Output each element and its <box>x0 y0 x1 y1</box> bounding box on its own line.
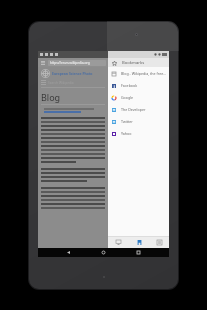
button[interactable]: History <box>149 237 169 248</box>
button[interactable]: Home <box>99 248 108 257</box>
button[interactable]: Menu <box>40 60 46 66</box>
button[interactable]: https://en.m.wikipedia.org <box>48 60 106 66</box>
button[interactable]: Facebook <box>108 79 169 91</box>
button[interactable]: Google <box>108 91 169 103</box>
staticText: Yahoo <box>121 131 132 136</box>
staticText: Bookmarks <box>122 60 145 66</box>
button[interactable]: Back <box>64 248 73 257</box>
staticText: https://en.m.wikipedia.org <box>50 61 90 65</box>
staticText: Search Wikipedia <box>48 81 74 85</box>
staticText: The Developer <box>121 107 146 112</box>
staticText: Google <box>121 95 134 100</box>
button[interactable]: Recent apps <box>134 248 143 257</box>
button[interactable]: Recent tabs <box>108 237 129 248</box>
button[interactable]: Bookmarks <box>129 237 149 248</box>
button[interactable]: Blog - Wikipedia, the free en... <box>108 67 169 79</box>
button[interactable]: The Developer <box>108 103 169 115</box>
staticText: Twitter <box>121 119 133 124</box>
staticText: European Science Photo <box>52 71 93 76</box>
staticText: Blog - Wikipedia, the free en... <box>121 71 167 76</box>
button[interactable]: Twitter <box>108 115 169 127</box>
button[interactable]: Add bookmark <box>111 60 117 66</box>
button[interactable]: Yahoo <box>108 127 169 139</box>
staticText: Blog <box>41 91 61 103</box>
staticText: Facebook <box>121 83 138 88</box>
